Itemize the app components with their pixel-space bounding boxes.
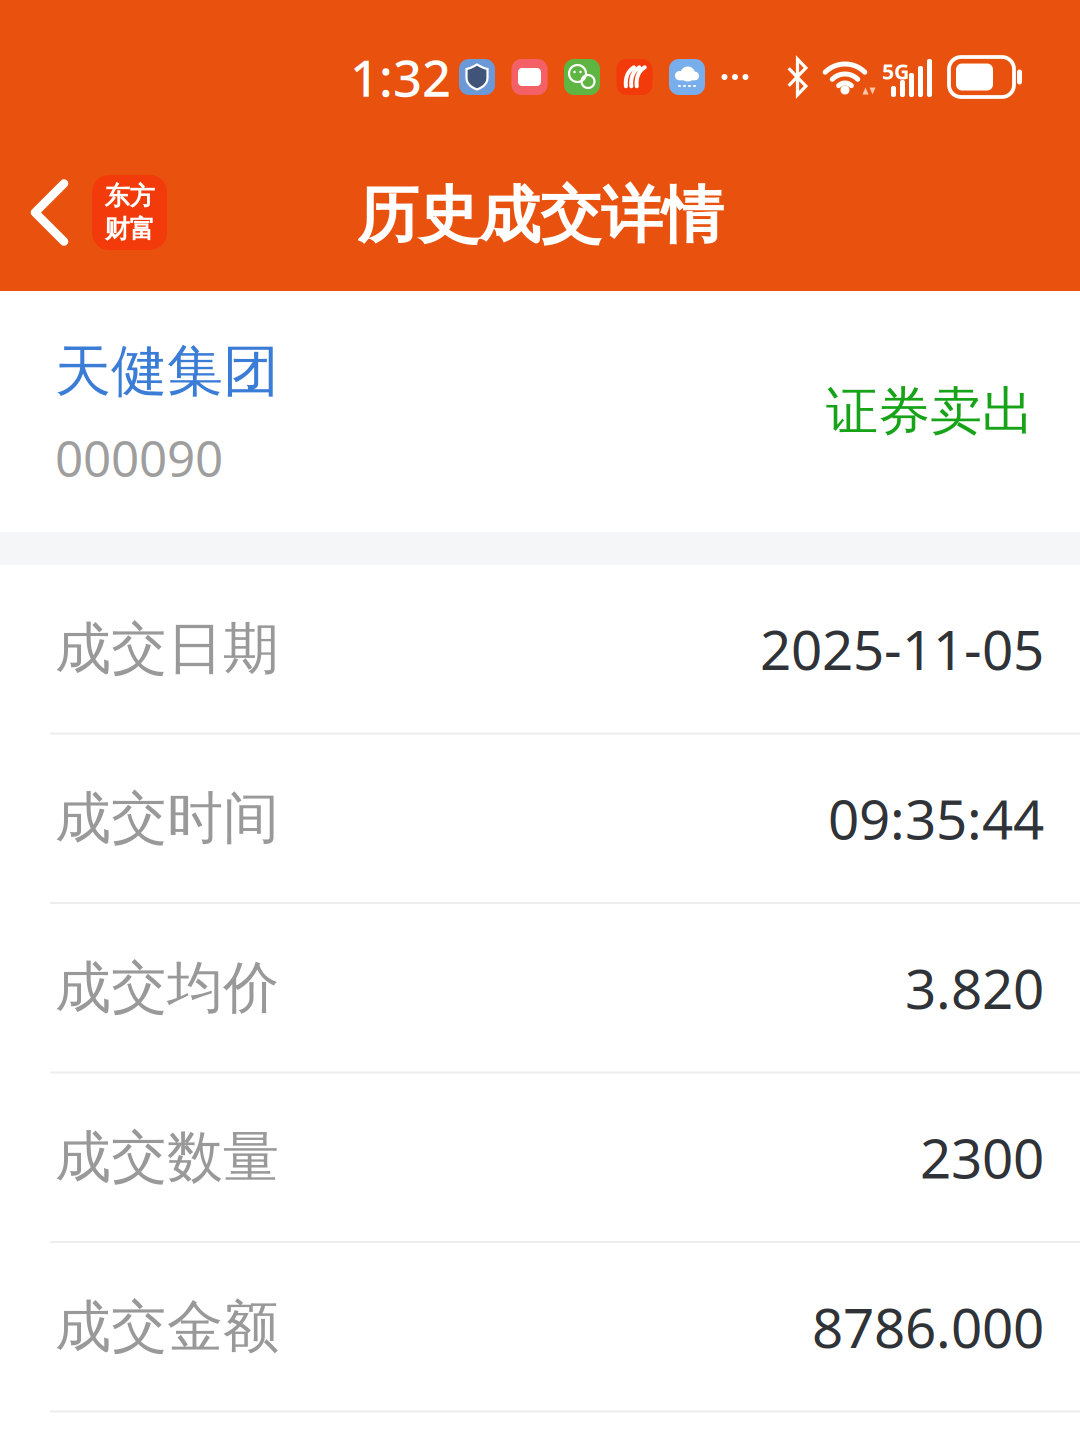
staticText: 东方 [104,180,154,211]
staticText: 3.820 [905,951,1044,1024]
staticText: 成交金额 [55,1292,279,1361]
staticText: 5G [882,57,909,85]
button[interactable]: Back [0,143,92,281]
staticText: 成交均价 [55,953,279,1022]
staticText: 财富 [104,213,154,245]
staticText: 成交日期 [55,614,279,683]
staticText: 09:35:44 [828,782,1044,855]
staticText: 天健集团 [55,337,279,406]
staticText: 成交数量 [55,1123,279,1192]
staticText: 8786.000 [812,1290,1044,1363]
staticText: 000090 [55,425,223,490]
staticText: 证券卖出 [826,380,1034,443]
staticText: 历史成交详情 [357,178,723,253]
staticText: 2025-11-05 [760,612,1044,685]
staticText: 成交时间 [55,784,279,853]
staticText: 2300 [920,1121,1044,1194]
staticText: 1:32 [350,43,451,111]
